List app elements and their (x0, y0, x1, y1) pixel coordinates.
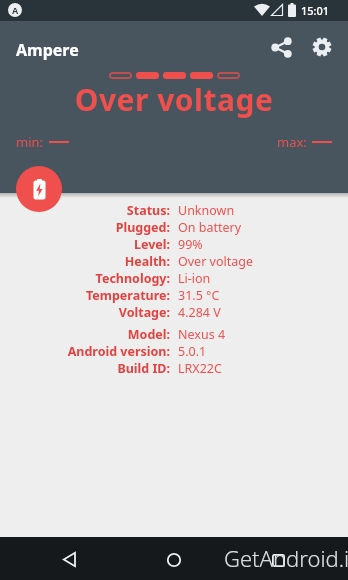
staticText: Status: (0, 202, 170, 219)
staticText: LRX22C (178, 360, 222, 377)
button[interactable] (154, 539, 194, 579)
staticText: Level: (0, 236, 170, 253)
staticText: Over voltage (0, 79, 348, 120)
staticText: Li-ion (178, 270, 211, 287)
staticText: Temperature: (0, 287, 170, 304)
button[interactable] (50, 539, 90, 579)
staticText: Nexus 4 (178, 326, 226, 343)
staticText: Voltage: (0, 304, 170, 321)
staticText: Android version: (0, 343, 170, 360)
staticText: min: (16, 133, 44, 151)
staticText: 15:01 (301, 3, 330, 18)
button[interactable] (262, 27, 302, 67)
staticText: Technology: (0, 270, 170, 287)
staticText: Unknown (178, 202, 235, 219)
staticText: GetAndroid.iR (224, 543, 348, 573)
staticText: A (12, 4, 19, 16)
staticText: 99% (178, 236, 203, 253)
button[interactable] (302, 27, 342, 67)
staticText: Plugged: (0, 219, 170, 236)
staticText: 4.284 V (178, 304, 221, 321)
staticText: Over voltage (178, 253, 253, 270)
staticText: Build ID: (0, 360, 170, 377)
staticText: Ampere (16, 39, 79, 61)
button[interactable] (16, 166, 62, 212)
button[interactable] (258, 539, 298, 579)
staticText: Model: (0, 326, 170, 343)
staticText: Health: (0, 253, 170, 270)
staticText: 5.0.1 (178, 343, 207, 360)
staticText: max: (277, 133, 307, 151)
staticText: 31.5 °C (178, 287, 220, 304)
staticText: On battery (178, 219, 242, 236)
